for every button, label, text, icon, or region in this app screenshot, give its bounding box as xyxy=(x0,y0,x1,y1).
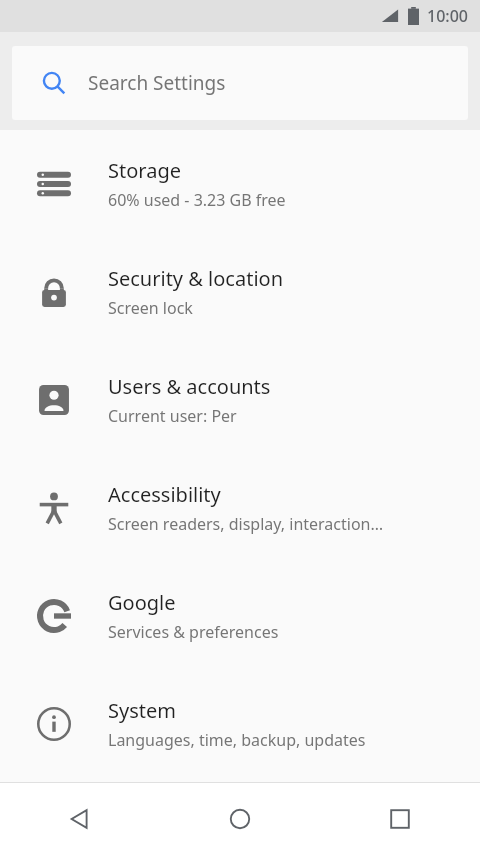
staticText: Search Settings xyxy=(88,70,226,96)
staticText: Screen readers, display, interaction… xyxy=(108,513,384,535)
other: Accessibility xyxy=(37,491,71,525)
staticText: System xyxy=(108,697,176,724)
other: System xyxy=(37,707,71,741)
button[interactable]: Recent apps xyxy=(320,783,480,854)
button[interactable]: Google xyxy=(0,562,480,670)
staticText: Services & preferences xyxy=(108,621,279,643)
button[interactable]: Back xyxy=(0,783,160,854)
staticText: Security & location xyxy=(108,265,284,292)
staticText: Screen lock xyxy=(108,297,193,319)
staticText: Accessibility xyxy=(108,481,221,508)
staticText: Languages, time, backup, updates xyxy=(108,729,366,751)
button[interactable]: Storage xyxy=(0,130,480,238)
button[interactable]: Accessibility xyxy=(0,454,480,562)
button[interactable]: Security and location xyxy=(0,238,480,346)
staticText: 60% used - 3.23 GB free xyxy=(108,189,286,211)
staticText: Current user: Per xyxy=(108,405,237,427)
other: Users and accounts xyxy=(37,383,71,417)
other: Security and location xyxy=(37,275,71,309)
staticText: 10:00 xyxy=(427,5,468,27)
staticText: Users & accounts xyxy=(108,373,271,400)
staticText: Google xyxy=(108,589,176,616)
staticText: Storage xyxy=(108,157,181,184)
other: Storage xyxy=(37,167,71,201)
button[interactable]: Search Settings xyxy=(12,46,468,120)
button[interactable]: Users and accounts xyxy=(0,346,480,454)
button[interactable]: System xyxy=(0,670,480,778)
other: Google xyxy=(37,599,71,633)
button[interactable]: Home xyxy=(160,783,320,854)
